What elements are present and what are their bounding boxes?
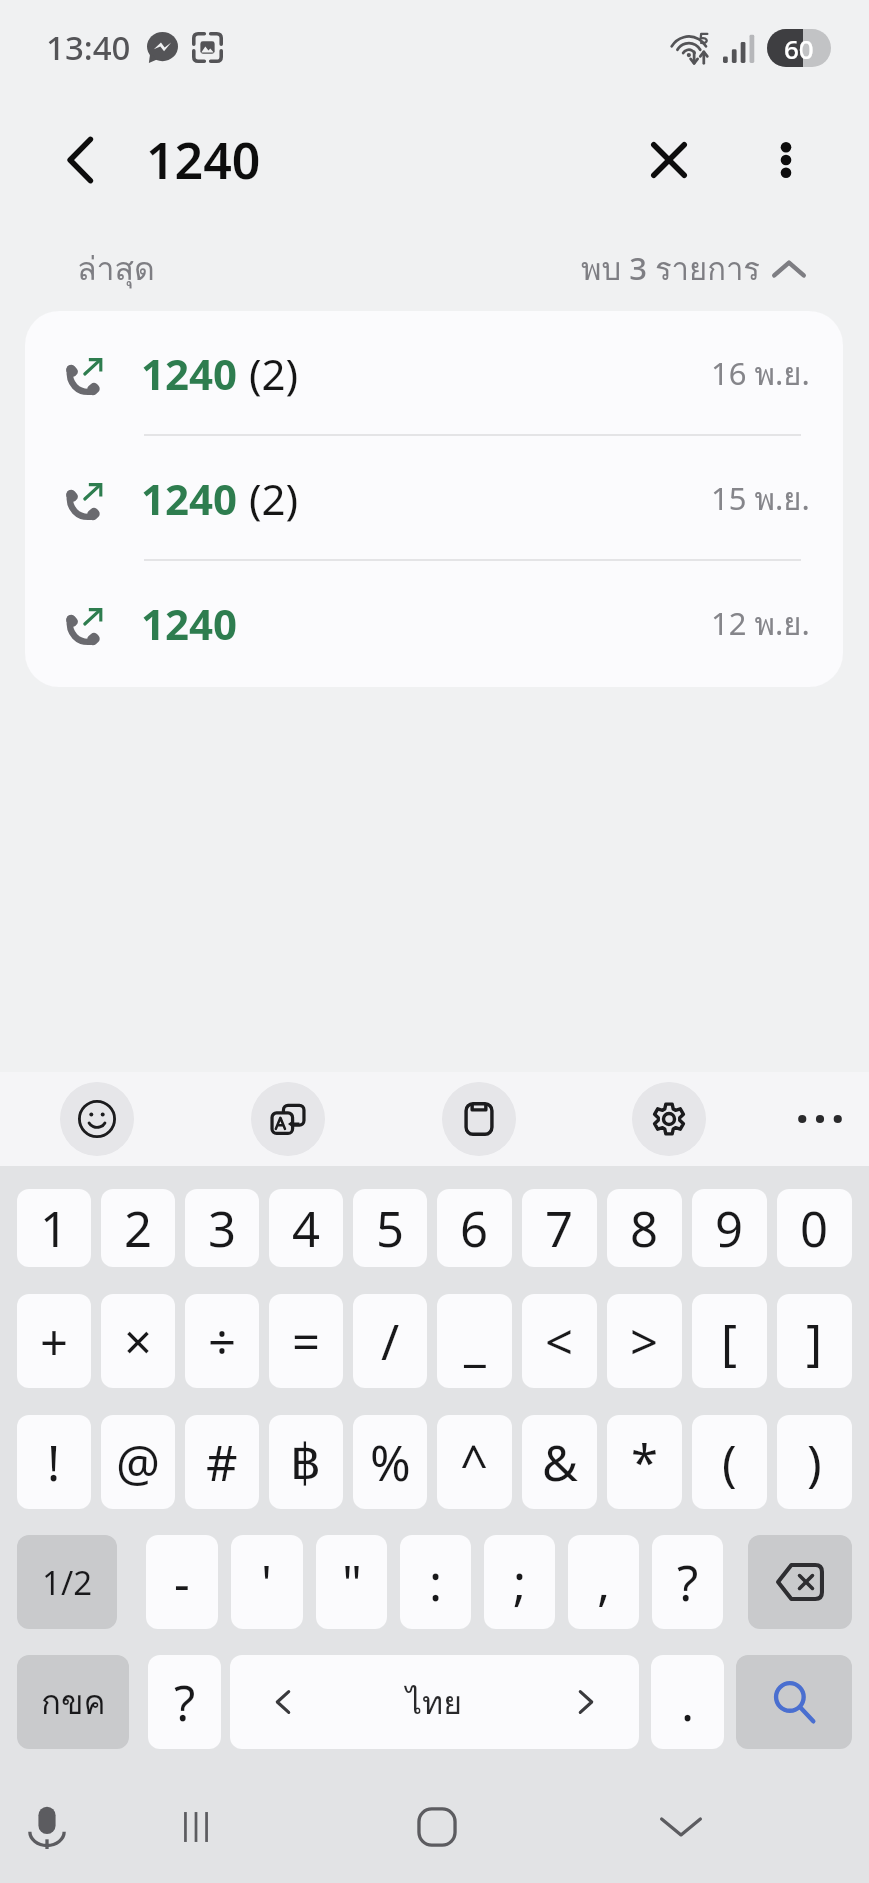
button[interactable]: ) bbox=[777, 1415, 852, 1509]
staticText: > bbox=[630, 1308, 659, 1375]
button[interactable]: 1 bbox=[17, 1189, 91, 1267]
button[interactable]: + bbox=[17, 1294, 91, 1388]
button[interactable]: 3 bbox=[185, 1189, 259, 1267]
button[interactable]: . bbox=[651, 1655, 724, 1749]
button[interactable]: ÷ bbox=[185, 1294, 259, 1388]
staticText: ; bbox=[513, 1549, 527, 1616]
staticText: ! bbox=[47, 1429, 61, 1496]
button[interactable]: ( bbox=[692, 1415, 767, 1509]
staticText: 60 bbox=[784, 31, 814, 66]
staticText: ) bbox=[807, 1429, 822, 1496]
staticText: 9 bbox=[715, 1195, 744, 1262]
staticText: 0 bbox=[800, 1195, 829, 1262]
staticText: ÷ bbox=[208, 1308, 237, 1375]
button[interactable]: [ bbox=[692, 1294, 767, 1388]
button[interactable]: ? bbox=[148, 1655, 221, 1749]
staticText: ' bbox=[261, 1549, 273, 1616]
staticText: ( bbox=[722, 1429, 737, 1496]
staticText: / bbox=[381, 1308, 400, 1375]
button[interactable]: ? bbox=[652, 1535, 723, 1629]
staticText: พบ 3 รายการ bbox=[581, 244, 761, 293]
button[interactable]: 4 bbox=[269, 1189, 343, 1267]
button[interactable]: Voice input bbox=[0, 1779, 95, 1875]
button[interactable]: ; bbox=[484, 1535, 555, 1629]
staticText: % bbox=[370, 1429, 411, 1496]
button[interactable]: 2 bbox=[101, 1189, 175, 1267]
button[interactable]: ! bbox=[17, 1415, 91, 1509]
button[interactable]: Hide keyboard bbox=[633, 1779, 729, 1875]
button[interactable]: Backspace bbox=[748, 1535, 852, 1629]
button[interactable]: 6 bbox=[437, 1189, 512, 1267]
staticText: 2 bbox=[124, 1195, 153, 1262]
button[interactable]: ' bbox=[231, 1535, 303, 1629]
button[interactable]: พบ 3 รายการ bbox=[581, 244, 805, 293]
staticText: 7 bbox=[545, 1195, 574, 1262]
button[interactable]: & bbox=[522, 1415, 597, 1509]
button[interactable]: ^ bbox=[437, 1415, 512, 1509]
button[interactable]: Clear bbox=[621, 112, 717, 208]
staticText: @ bbox=[116, 1429, 161, 1496]
button[interactable]: Settings bbox=[632, 1082, 706, 1156]
button[interactable]: ] bbox=[777, 1294, 852, 1388]
staticText: : bbox=[429, 1549, 443, 1616]
staticText: กขค bbox=[41, 1676, 106, 1728]
button[interactable]: 1240 bbox=[25, 311, 843, 436]
staticText: ล่าสุด bbox=[77, 243, 155, 294]
staticText: ? bbox=[174, 1669, 196, 1736]
button[interactable]: Translate bbox=[251, 1082, 325, 1156]
button[interactable]: More options bbox=[738, 112, 834, 208]
staticText: 16 พ.ย. bbox=[711, 349, 810, 398]
staticText: " bbox=[342, 1549, 362, 1616]
staticText: (2) bbox=[249, 345, 299, 402]
button[interactable]: , bbox=[568, 1535, 639, 1629]
button[interactable]: / bbox=[353, 1294, 427, 1388]
button[interactable]: < bbox=[522, 1294, 597, 1388]
staticText: * bbox=[631, 1429, 658, 1496]
button[interactable]: : bbox=[400, 1535, 471, 1629]
button[interactable]: * bbox=[607, 1415, 682, 1509]
button[interactable]: Emoji bbox=[60, 1082, 134, 1156]
button[interactable]: Home bbox=[389, 1779, 485, 1875]
button[interactable]: 8 bbox=[607, 1189, 682, 1267]
staticText: 1 bbox=[40, 1195, 69, 1262]
button[interactable]: _ bbox=[437, 1294, 512, 1388]
button[interactable]: Clipboard bbox=[442, 1082, 516, 1156]
button[interactable]: 1240 bbox=[25, 561, 843, 686]
button[interactable]: ไทย bbox=[230, 1655, 639, 1749]
staticText: ? bbox=[677, 1549, 699, 1616]
button[interactable]: " bbox=[316, 1535, 387, 1629]
button[interactable]: กขค bbox=[17, 1655, 129, 1749]
button[interactable]: More bbox=[783, 1082, 857, 1156]
button[interactable]: > bbox=[607, 1294, 682, 1388]
button[interactable]: Search bbox=[736, 1655, 852, 1749]
button[interactable]: Back bbox=[32, 112, 128, 208]
button[interactable]: 9 bbox=[692, 1189, 767, 1267]
button[interactable]: × bbox=[101, 1294, 175, 1388]
staticText: 3 bbox=[208, 1195, 237, 1262]
staticText: 1240 bbox=[141, 470, 238, 527]
staticText: 1240 bbox=[146, 126, 261, 194]
button[interactable]: Recents bbox=[148, 1779, 244, 1875]
button[interactable]: @ bbox=[101, 1415, 175, 1509]
button[interactable]: ฿ bbox=[269, 1415, 343, 1509]
staticText: [ bbox=[721, 1308, 738, 1375]
button[interactable]: 1240 bbox=[25, 436, 843, 561]
staticText: + bbox=[40, 1308, 69, 1375]
staticText: 6 bbox=[460, 1195, 489, 1262]
staticText: (2) bbox=[249, 470, 299, 527]
button[interactable]: 1/2 bbox=[17, 1535, 117, 1629]
staticText: 15 พ.ย. bbox=[711, 474, 810, 523]
staticText: ^ bbox=[460, 1429, 489, 1496]
button[interactable]: # bbox=[185, 1415, 259, 1509]
button[interactable]: 7 bbox=[522, 1189, 597, 1267]
button[interactable]: = bbox=[269, 1294, 343, 1388]
button[interactable]: 0 bbox=[777, 1189, 852, 1267]
staticText: . bbox=[681, 1669, 695, 1736]
button[interactable]: % bbox=[353, 1415, 427, 1509]
staticText: 12 พ.ย. bbox=[711, 599, 810, 648]
button[interactable]: - bbox=[146, 1535, 218, 1629]
staticText: ฿ bbox=[290, 1434, 322, 1491]
button[interactable]: 5 bbox=[353, 1189, 427, 1267]
staticText: ไทย bbox=[406, 1677, 462, 1728]
staticText: 1240 bbox=[141, 595, 238, 652]
